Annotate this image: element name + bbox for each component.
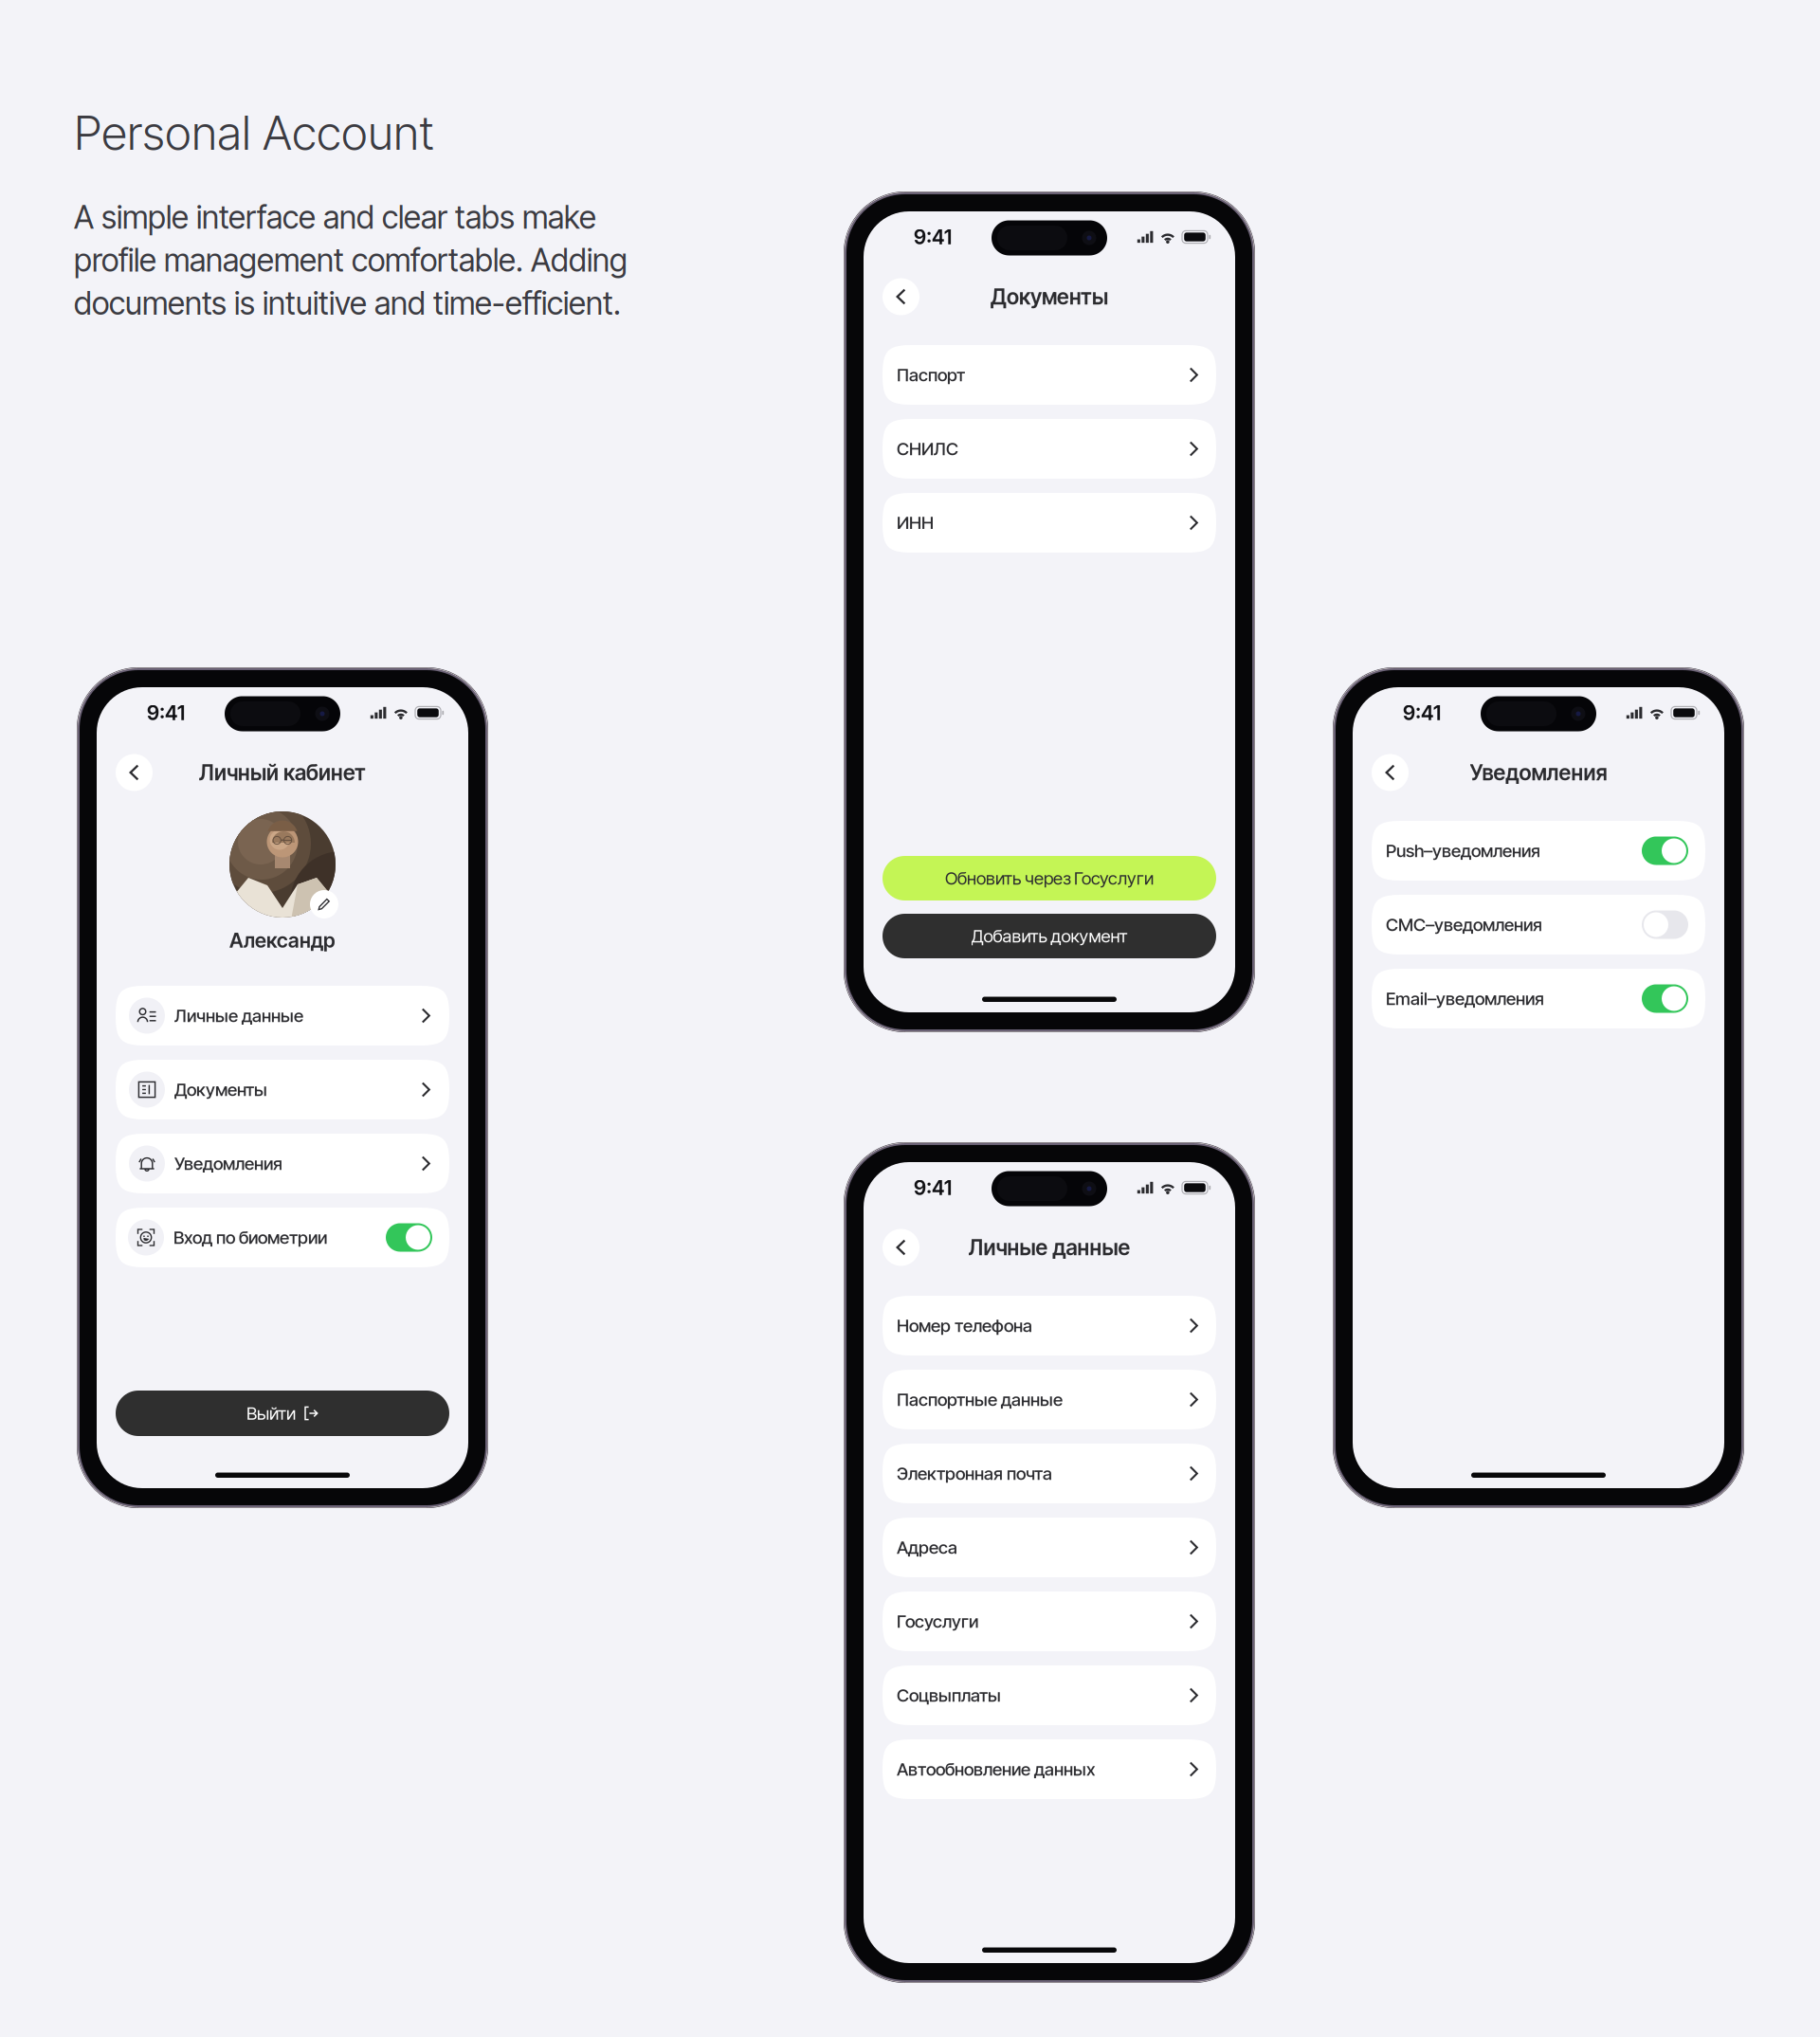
- button[interactable]: Адреса: [883, 1518, 1216, 1577]
- button[interactable]: ИНН: [883, 493, 1216, 553]
- staticText: Документы: [991, 284, 1108, 310]
- staticText: Адреса: [897, 1537, 957, 1558]
- staticText: 9:41: [1403, 701, 1441, 725]
- button[interactable]: Автообновление данных: [883, 1739, 1216, 1799]
- button[interactable]: Back: [883, 1229, 919, 1266]
- button[interactable]: Back: [883, 278, 919, 315]
- button[interactable]: Паспорт: [883, 345, 1216, 405]
- staticText: Паспорт: [897, 364, 965, 386]
- button[interactable]: Личные данные: [116, 986, 449, 1046]
- staticText: Соцвыплаты: [897, 1685, 1001, 1706]
- button[interactable]: Госуслуги: [883, 1591, 1216, 1651]
- staticText: 9:41: [147, 701, 185, 725]
- staticText: Паспортные данные: [897, 1389, 1063, 1410]
- button[interactable]: Edit photo: [310, 890, 338, 918]
- button[interactable]: СНИЛС: [883, 419, 1216, 479]
- staticText: ИНН: [897, 512, 934, 533]
- staticText: Личные данные: [968, 1234, 1130, 1260]
- button[interactable]: Push–уведомления: [1372, 821, 1705, 881]
- button[interactable]: Номер телефона: [883, 1296, 1216, 1355]
- button[interactable]: Email–уведомления: [1372, 969, 1705, 1028]
- button[interactable]: Вход по биометрии: [116, 1208, 449, 1267]
- staticText: СМС–уведомления: [1386, 914, 1542, 935]
- button[interactable]: Back: [116, 754, 153, 791]
- button[interactable]: Паспортные данные: [883, 1370, 1216, 1429]
- staticText: Автообновление данных: [897, 1759, 1096, 1780]
- button[interactable]: СМС–уведомления: [1372, 895, 1705, 955]
- staticText: 9:41: [914, 225, 952, 249]
- staticText: documents is intuitive and time-efficien…: [74, 284, 621, 322]
- staticText: Номер телефона: [897, 1315, 1032, 1336]
- staticText: Госуслуги: [897, 1611, 978, 1632]
- staticText: Документы: [174, 1079, 267, 1100]
- staticText: Выйти: [246, 1403, 296, 1424]
- staticText: Личный кабинет: [199, 760, 366, 786]
- staticText: Добавить документ: [971, 925, 1128, 947]
- staticText: A simple interface and clear tabs make: [74, 198, 596, 236]
- button[interactable]: Выйти: [116, 1391, 449, 1436]
- staticText: Email–уведомления: [1386, 988, 1544, 1009]
- staticText: Личные данные: [174, 1005, 303, 1026]
- staticText: Уведомления: [1470, 760, 1607, 786]
- button[interactable]: Обновить через Госуслуги: [883, 856, 1216, 900]
- staticText: Обновить через Госуслуги: [945, 868, 1154, 889]
- button[interactable]: Документы: [116, 1060, 449, 1119]
- button[interactable]: Уведомления: [116, 1134, 449, 1193]
- button[interactable]: Добавить документ: [883, 914, 1216, 958]
- button[interactable]: Электронная почта: [883, 1444, 1216, 1503]
- staticText: СНИЛС: [897, 438, 958, 460]
- staticText: 9:41: [914, 1175, 952, 1200]
- button[interactable]: Back: [1372, 754, 1409, 791]
- staticText: Personal Account: [74, 105, 434, 161]
- button[interactable]: Соцвыплаты: [883, 1665, 1216, 1725]
- staticText: Вход по биометрии: [173, 1227, 327, 1248]
- staticText: Александр: [229, 928, 336, 953]
- staticText: Электронная почта: [897, 1463, 1052, 1484]
- staticText: profile management comfortable. Adding: [74, 241, 628, 279]
- staticText: Push–уведомления: [1386, 840, 1540, 861]
- staticText: Уведомления: [174, 1153, 282, 1174]
